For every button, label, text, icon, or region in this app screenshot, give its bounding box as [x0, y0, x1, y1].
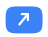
button[interactable]: Open link: [0, 0, 48, 37]
